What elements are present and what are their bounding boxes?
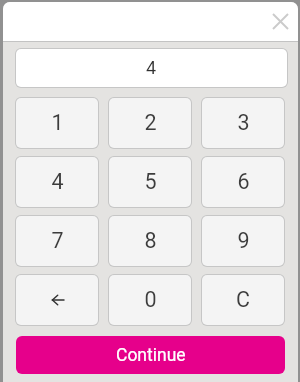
staticText: 7 <box>51 228 64 253</box>
button[interactable]: 2 <box>109 98 191 148</box>
staticText: 0 <box>144 287 157 312</box>
button[interactable]: Continue <box>16 336 285 374</box>
button[interactable]: 4 <box>16 157 98 207</box>
staticText: 1 <box>51 110 64 135</box>
button[interactable]: Close <box>263 4 297 38</box>
button[interactable]: 3 <box>202 98 284 148</box>
button[interactable]: 5 <box>109 157 191 207</box>
staticText: C <box>236 287 250 312</box>
staticText: 3 <box>237 110 250 135</box>
staticText: Continue <box>116 345 186 366</box>
staticText: 4 <box>146 57 157 78</box>
button[interactable]: 8 <box>109 216 191 266</box>
button[interactable]: 9 <box>202 216 284 266</box>
button[interactable]: 1 <box>16 98 98 148</box>
staticText: 5 <box>144 169 157 194</box>
button[interactable]: 4 <box>16 49 287 87</box>
staticText: 9 <box>237 228 250 253</box>
staticText: 8 <box>144 228 157 253</box>
button[interactable]: 7 <box>16 216 98 266</box>
button[interactable]: Backspace <box>16 275 98 325</box>
button[interactable]: 0 <box>109 275 191 325</box>
staticText: 2 <box>144 110 157 135</box>
button[interactable]: 6 <box>202 157 284 207</box>
button[interactable]: C <box>202 275 284 325</box>
other: Backspace <box>47 289 69 311</box>
staticText: 6 <box>237 169 250 194</box>
staticText: 4 <box>51 169 64 194</box>
